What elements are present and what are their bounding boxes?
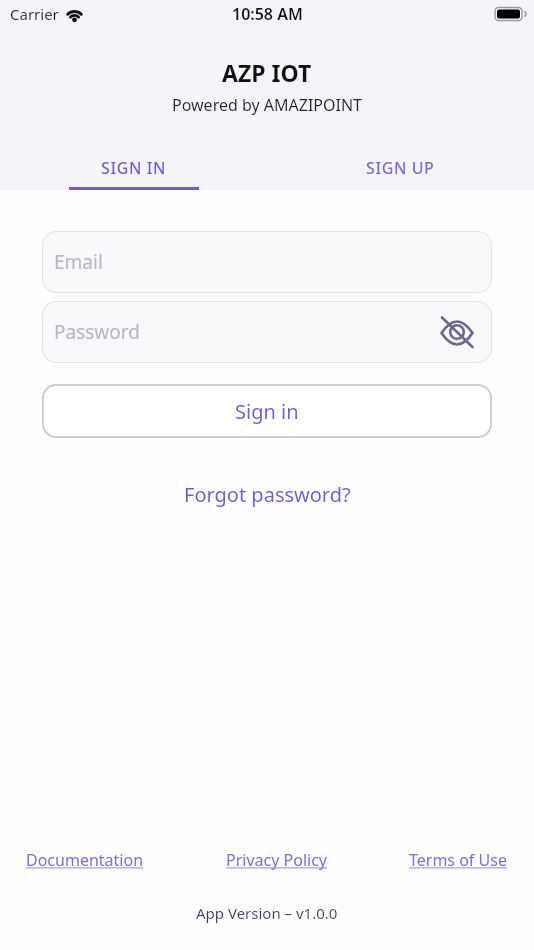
- button[interactable]: SIGN IN: [0, 116, 267, 179]
- staticText: Carrier: [10, 4, 59, 24]
- staticText: Email: [54, 249, 475, 275]
- staticText: Documentation: [26, 849, 144, 871]
- button[interactable]: SIGN UP: [267, 116, 534, 179]
- staticText: Password: [54, 319, 439, 345]
- button[interactable]: Password: [42, 301, 492, 363]
- staticText: 10:58 AM: [232, 3, 303, 25]
- staticText: SIGN UP: [366, 157, 435, 179]
- button[interactable]: Terms of Use: [409, 849, 507, 871]
- button[interactable]: [439, 314, 475, 350]
- staticText: Forgot password?: [184, 481, 351, 508]
- button[interactable]: Documentation: [26, 849, 144, 871]
- button[interactable]: Privacy Policy: [226, 849, 327, 871]
- staticText: AZP IOT: [222, 57, 312, 88]
- staticText: App Version – v1.0.0: [196, 903, 338, 923]
- staticText: Privacy Policy: [226, 849, 327, 871]
- staticText: Terms of Use: [409, 849, 507, 871]
- staticText: Powered by AMAZIPOINT: [172, 94, 362, 116]
- staticText: Sign in: [235, 398, 299, 425]
- button[interactable]: Sign in: [42, 384, 492, 438]
- button[interactable]: Forgot password?: [184, 481, 351, 508]
- staticText: SIGN IN: [101, 157, 166, 179]
- button[interactable]: Email: [42, 231, 492, 293]
